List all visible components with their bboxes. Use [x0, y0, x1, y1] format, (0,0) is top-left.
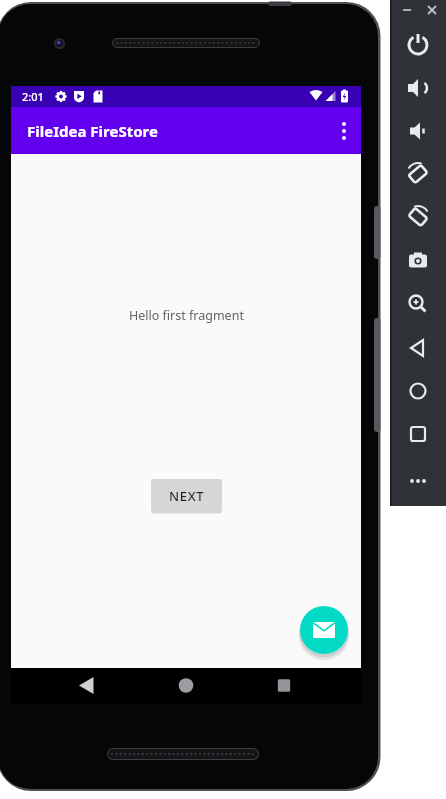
staticText: Hello first fragment: [129, 307, 244, 324]
button[interactable]: [11, 668, 127, 704]
button[interactable]: [390, 24, 446, 67]
button[interactable]: [390, 368, 446, 411]
staticText: 2:01: [22, 89, 44, 104]
button[interactable]: [390, 325, 446, 368]
button[interactable]: [300, 606, 348, 654]
staticText: FileIdea FireStore: [27, 121, 158, 141]
button[interactable]: [390, 411, 446, 454]
button[interactable]: [390, 454, 446, 497]
button[interactable]: [127, 668, 244, 704]
button[interactable]: [390, 110, 446, 153]
button[interactable]: [321, 111, 361, 151]
button[interactable]: NEXT: [151, 479, 222, 512]
button[interactable]: [244, 668, 361, 704]
staticText: NEXT: [169, 487, 205, 505]
button[interactable]: [390, 67, 446, 110]
button[interactable]: [390, 282, 446, 325]
button[interactable]: [390, 153, 446, 196]
button[interactable]: [390, 196, 446, 239]
button[interactable]: [390, 239, 446, 282]
